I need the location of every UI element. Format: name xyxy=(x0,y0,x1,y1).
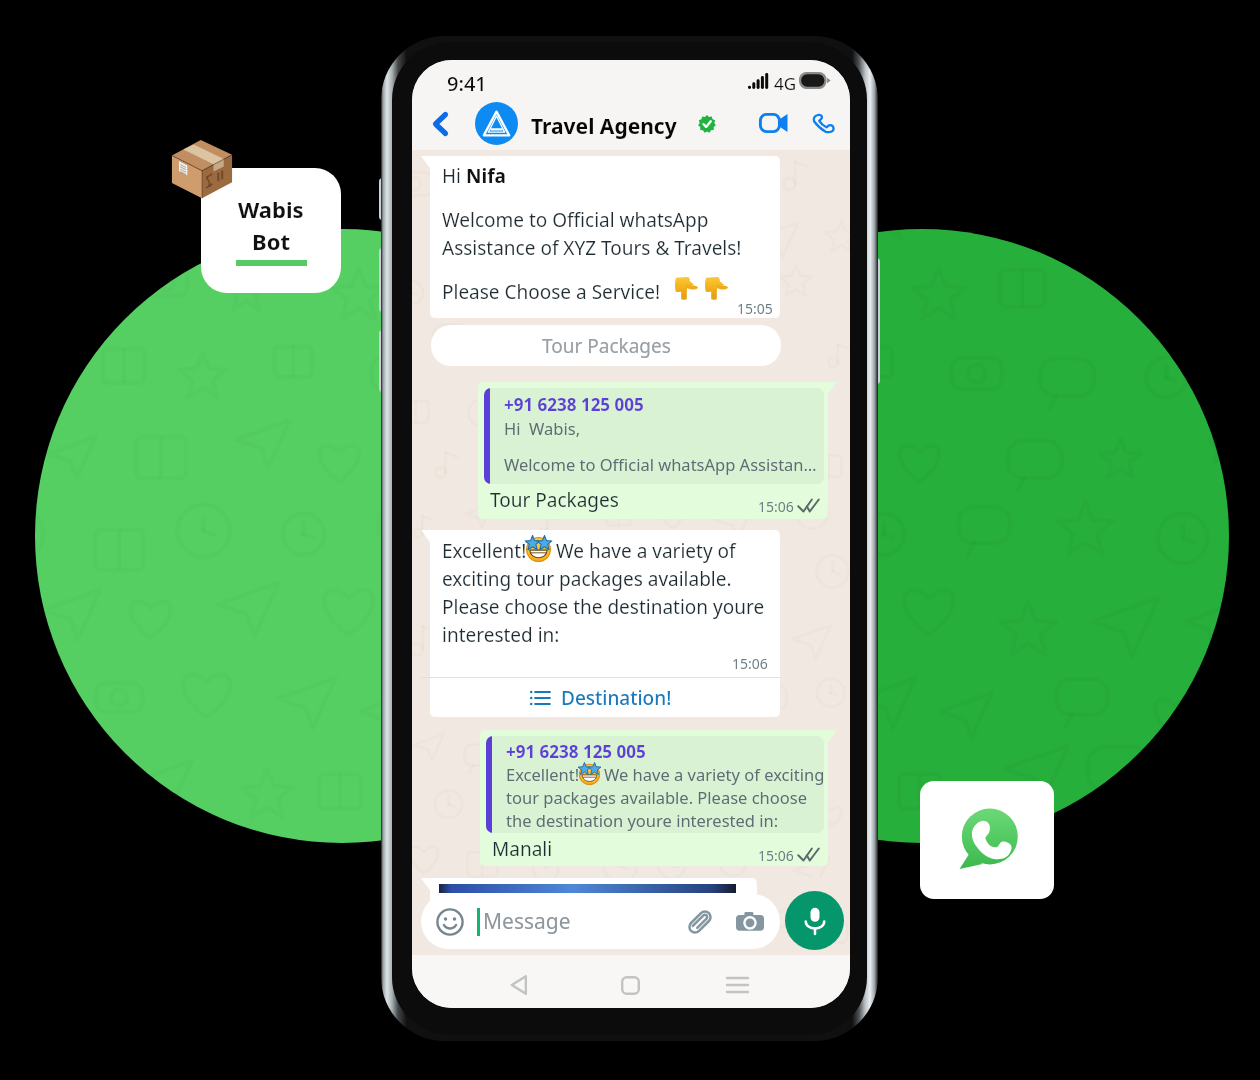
button[interactable]: Hi xyxy=(421,156,780,318)
staticText: +91 6238 125 005 xyxy=(504,393,644,416)
staticText: Welcome to Official whatsApp Assistan… xyxy=(504,453,817,475)
button[interactable]: Wabis xyxy=(201,168,341,293)
other: Attach xyxy=(686,908,714,936)
button[interactable]: Video call xyxy=(756,106,790,140)
staticText: Hi xyxy=(442,163,466,189)
staticText: Excellent! xyxy=(442,538,527,564)
button[interactable]: Message xyxy=(421,894,780,949)
button[interactable]: Destination! xyxy=(421,678,780,717)
button[interactable]: Tour Packages xyxy=(431,325,781,366)
staticText: tour packages available. Please choose xyxy=(506,786,807,808)
staticText: Message xyxy=(483,907,571,936)
staticText: 4G xyxy=(774,72,797,95)
staticText: We have a variety of xyxy=(556,538,736,564)
button[interactable] xyxy=(480,730,837,866)
staticText: 15:06 xyxy=(732,654,768,673)
staticText: Bot xyxy=(252,226,290,256)
button[interactable]: Excellent! xyxy=(421,530,780,717)
staticText: Wabis xyxy=(238,194,304,224)
button[interactable]: Profile xyxy=(475,102,518,145)
staticText: 15:05 xyxy=(737,299,773,318)
staticText: Excellent! xyxy=(506,763,580,785)
staticText: the destination youre interested in: xyxy=(506,809,779,831)
button[interactable]: Home xyxy=(607,962,653,1008)
staticText: exciting tour packages available. xyxy=(442,566,732,592)
staticText: Tour Packages xyxy=(542,333,671,359)
staticText: Please Choose a Service! xyxy=(442,279,661,305)
staticText: 9:41 xyxy=(447,70,487,97)
button[interactable]: Back xyxy=(496,962,542,1008)
staticText: Please choose the destination youre xyxy=(442,594,765,620)
staticText: Manali xyxy=(492,836,553,862)
button[interactable] xyxy=(478,382,837,519)
button[interactable]: WhatsApp xyxy=(920,781,1054,899)
staticText: Welcome to Official whatsApp xyxy=(442,207,709,233)
staticText: Travel Agency xyxy=(531,112,677,141)
other: Camera xyxy=(736,908,764,936)
staticText: Hi Wabis, xyxy=(504,417,581,439)
button[interactable]: Call xyxy=(806,106,840,140)
staticText: Nifa xyxy=(466,163,506,189)
staticText: +91 6238 125 005 xyxy=(506,740,646,763)
staticText: We have a variety of exciting xyxy=(604,763,824,785)
staticText: 15:06 xyxy=(758,846,794,865)
button[interactable]: Back xyxy=(424,107,457,140)
staticText: 15:06 xyxy=(758,497,794,516)
staticText: interested in: xyxy=(442,622,560,648)
staticText: Destination! xyxy=(561,685,672,711)
staticText: Assistance of XYZ Tours & Travels! xyxy=(442,235,742,261)
staticText: Tour Packages xyxy=(490,487,619,513)
button[interactable]: Recents xyxy=(714,962,760,1008)
button[interactable]: Voice message xyxy=(785,891,844,950)
